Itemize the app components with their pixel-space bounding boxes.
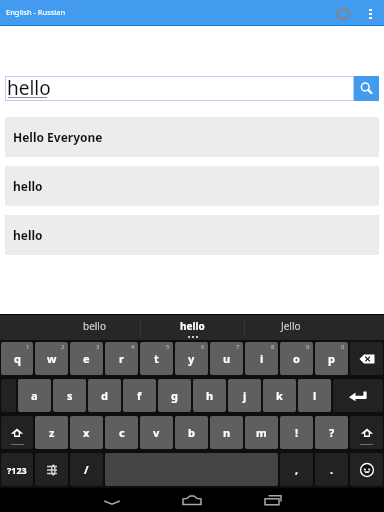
button[interactable]: Home	[173, 488, 211, 512]
button[interactable]: y	[175, 342, 208, 375]
staticText: j	[243, 388, 247, 403]
staticText: Jello	[281, 319, 301, 333]
staticText: f	[137, 388, 142, 403]
staticText: x	[83, 425, 90, 440]
button[interactable]: ,	[280, 453, 313, 486]
button[interactable]: j	[228, 379, 261, 412]
button[interactable]	[350, 342, 383, 375]
button[interactable]: h	[193, 379, 226, 412]
staticText: 2	[61, 343, 65, 351]
button[interactable]	[350, 453, 383, 486]
staticText: v	[153, 425, 160, 440]
staticText: hello	[7, 75, 51, 100]
button[interactable]: b	[175, 416, 208, 449]
staticText: 3	[96, 343, 100, 351]
button[interactable]	[1, 416, 33, 449]
staticText: m	[256, 425, 267, 440]
button[interactable]: i	[245, 342, 278, 375]
button[interactable]: s	[53, 379, 86, 412]
staticText: 8	[271, 343, 275, 351]
button[interactable]: z	[35, 416, 68, 449]
staticText: e	[83, 351, 90, 366]
staticText: a	[31, 388, 38, 403]
button[interactable]: w	[35, 342, 68, 375]
staticText: hello	[13, 227, 43, 243]
staticText: bello	[83, 319, 106, 333]
staticText: hello	[13, 178, 43, 194]
button[interactable]: hello	[5, 76, 354, 101]
button[interactable]: v	[140, 416, 173, 449]
button[interactable]: Hello Everyone	[5, 117, 379, 157]
button[interactable]: f	[123, 379, 156, 412]
button[interactable]: ?123	[1, 453, 33, 486]
button[interactable]: e	[70, 342, 103, 375]
staticText: g	[171, 388, 178, 403]
staticText: p	[328, 351, 335, 366]
staticText: Hello Everyone	[13, 129, 103, 145]
staticText: ,	[295, 462, 299, 477]
button[interactable]	[35, 453, 68, 486]
staticText: 5	[166, 343, 170, 351]
button[interactable]: Search	[354, 76, 379, 101]
staticText: 9	[306, 343, 310, 351]
button[interactable]: c	[105, 416, 138, 449]
button[interactable]: u	[210, 342, 243, 375]
button[interactable]: More options	[359, 2, 382, 25]
staticText: u	[223, 351, 231, 366]
staticText: 1	[26, 343, 30, 351]
button[interactable]: bello	[0, 315, 140, 340]
button[interactable]: o	[280, 342, 313, 375]
button[interactable]	[333, 379, 383, 412]
staticText: ?	[329, 425, 335, 440]
staticText: t	[154, 351, 159, 366]
staticText: d	[101, 388, 108, 403]
staticText: ?123	[7, 464, 27, 476]
button[interactable]: Jello	[244, 315, 384, 340]
button[interactable]: .	[315, 453, 348, 486]
button[interactable]: t	[140, 342, 173, 375]
staticText: 4	[131, 343, 135, 351]
button[interactable]: q	[1, 342, 33, 375]
staticText: English - Russian	[6, 7, 66, 17]
staticText: 7	[236, 343, 240, 351]
button[interactable]: p	[315, 342, 348, 375]
button[interactable]: Back	[93, 488, 130, 512]
button[interactable]: k	[263, 379, 296, 412]
staticText: s	[67, 388, 73, 403]
staticText: r	[119, 351, 124, 366]
staticText: k	[276, 388, 283, 403]
button[interactable]: n	[210, 416, 243, 449]
staticText: i	[260, 351, 264, 366]
staticText: hello	[180, 319, 205, 333]
button[interactable]: m	[245, 416, 278, 449]
staticText: .	[330, 462, 334, 477]
staticText: /	[84, 462, 89, 477]
button[interactable]: g	[158, 379, 191, 412]
button[interactable]: Recent apps	[254, 488, 292, 512]
button[interactable]: ?	[315, 416, 348, 449]
staticText: 6	[201, 343, 205, 351]
button[interactable]: hello	[5, 166, 379, 206]
staticText: b	[188, 425, 195, 440]
staticText: 0	[341, 343, 345, 351]
staticText: n	[223, 425, 231, 440]
button[interactable]: hello	[5, 215, 379, 255]
staticText: o	[293, 351, 300, 366]
staticText: !	[295, 425, 299, 440]
button[interactable]: Swap languages	[330, 1, 355, 26]
button[interactable]: a	[18, 379, 51, 412]
staticText: h	[206, 388, 214, 403]
button[interactable]: hello	[140, 315, 244, 340]
button[interactable]: d	[88, 379, 121, 412]
staticText: y	[188, 351, 195, 366]
button[interactable]: l	[298, 379, 331, 412]
staticText: q	[14, 351, 21, 366]
button[interactable]: /	[70, 453, 103, 486]
button[interactable]: !	[280, 416, 313, 449]
button[interactable]	[350, 416, 383, 449]
button[interactable]: x	[70, 416, 103, 449]
button[interactable]: r	[105, 342, 138, 375]
staticText: l	[313, 388, 317, 403]
